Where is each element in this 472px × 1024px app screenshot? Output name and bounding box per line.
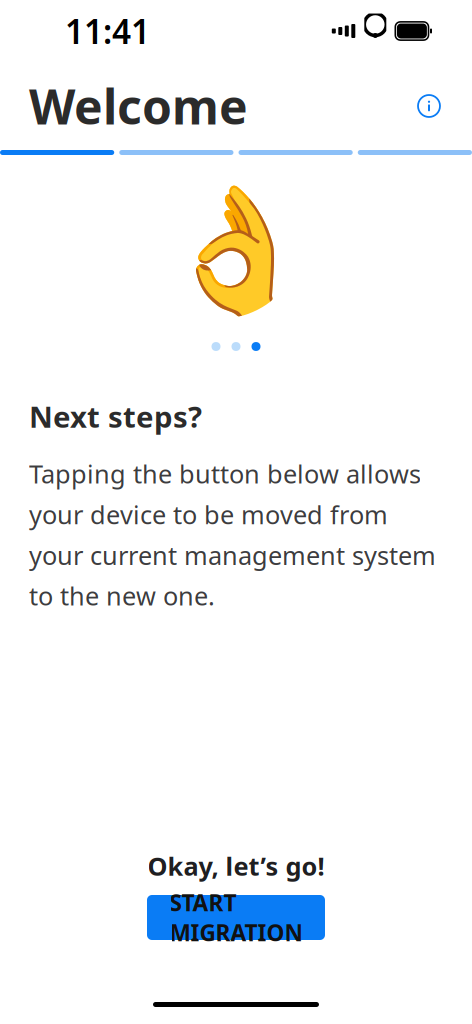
button[interactable]: Information	[407, 84, 451, 128]
staticText: START MIGRATION	[169, 887, 302, 948]
button[interactable]: START MIGRATION	[147, 895, 325, 940]
staticText: Tapping the button below allows your dev…	[29, 457, 436, 613]
staticText: Next steps?	[29, 397, 202, 436]
staticText: 👌	[159, 180, 312, 320]
staticText: Welcome	[29, 74, 248, 138]
staticText: Okay, let’s go!	[147, 849, 324, 883]
staticText: 11:41	[65, 9, 150, 53]
